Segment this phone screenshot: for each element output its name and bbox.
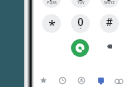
staticText: + xyxy=(79,25,82,30)
staticText: 0 xyxy=(77,15,84,29)
button[interactable]: Recents xyxy=(53,72,72,87)
button[interactable]: Call xyxy=(71,39,89,57)
staticText: 8 xyxy=(77,0,84,4)
button[interactable]: Backspace xyxy=(103,40,115,52)
button[interactable]: 8 xyxy=(71,0,90,8)
button[interactable]: Favorites xyxy=(34,72,53,87)
button[interactable]: Voicemail xyxy=(110,72,124,87)
button[interactable]: # xyxy=(100,14,119,33)
staticText: * xyxy=(48,16,56,33)
staticText: WXYZ xyxy=(104,0,115,5)
button[interactable]: Contacts xyxy=(72,72,91,87)
button[interactable]: 9 xyxy=(100,0,119,8)
staticText: # xyxy=(106,15,113,29)
button[interactable]: 7 xyxy=(42,0,61,8)
button[interactable]: 0 xyxy=(71,14,90,33)
staticText: 9 xyxy=(106,0,113,4)
staticText: 7 xyxy=(48,0,55,4)
button[interactable]: Keypad xyxy=(91,72,110,87)
button[interactable]: * xyxy=(42,14,61,33)
staticText: PQRS xyxy=(47,0,57,5)
staticText: TUV xyxy=(77,0,85,5)
